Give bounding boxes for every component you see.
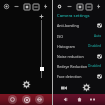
button[interactable]: Flash (94, 2, 103, 11)
staticText: Camera settings (57, 13, 90, 19)
button[interactable]: Toggle (97, 54, 102, 59)
button[interactable]: Gallery (8, 95, 17, 104)
staticText: Noise reduction (57, 54, 97, 59)
button[interactable]: White balance (22, 2, 31, 11)
button[interactable]: Scene mode (84, 2, 93, 11)
button[interactable]: Toggle (97, 74, 102, 79)
button[interactable]: Exposure (12, 2, 21, 11)
button[interactable]: White balance (75, 2, 84, 11)
button[interactable]: Settings (80, 81, 93, 94)
button[interactable]: Redeye Reduction (53, 61, 105, 71)
staticText: Disabled (88, 44, 102, 48)
button[interactable]: Shutter (22, 95, 31, 104)
button[interactable]: Camera mode (58, 82, 69, 93)
button[interactable]: Settings (19, 77, 33, 91)
button[interactable]: Noise reduction (53, 51, 105, 61)
button[interactable]: Anti-banding (53, 20, 105, 31)
button[interactable]: Switch camera (35, 95, 44, 104)
staticText: ISO (57, 34, 94, 39)
button[interactable]: Back (61, 95, 70, 104)
staticText: Auto (94, 34, 102, 38)
button[interactable]: ISO (53, 31, 105, 41)
staticText: Disabled (88, 64, 102, 68)
staticText: Histogram (57, 44, 88, 49)
staticText: Redeye Reduction (57, 64, 88, 69)
button[interactable]: Flash (41, 2, 50, 11)
button[interactable]: Exposure (65, 2, 74, 11)
button[interactable]: Scene mode (31, 2, 40, 11)
staticText: Anti-banding (57, 23, 97, 28)
button[interactable]: Face detection (53, 71, 105, 81)
button[interactable]: Settings (55, 2, 64, 11)
button[interactable]: Recents (88, 95, 97, 104)
button[interactable]: Histogram (53, 41, 105, 51)
button[interactable]: More options (2, 2, 11, 11)
button[interactable]: Home (75, 95, 84, 104)
button[interactable]: Toggle (97, 23, 102, 28)
staticText: Face detection (57, 74, 97, 79)
